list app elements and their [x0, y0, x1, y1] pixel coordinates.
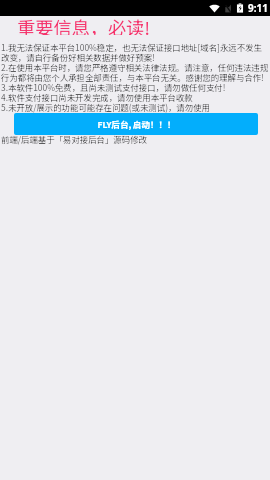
other: Battery charging	[236, 3, 244, 13]
staticText: FLY后台, 启动！！！	[97, 118, 176, 130]
other: No SIM card	[224, 3, 232, 13]
staticText: 重要信息，必读!	[17, 14, 151, 35]
staticText: 5.未开放/展示的功能可能存在问题(或未测试)，请勿使用	[1, 103, 210, 113]
button[interactable]: FLY后台, 启动！！！	[14, 113, 258, 135]
staticText: 前端/后端基于「易对接后台」源码修改	[1, 133, 147, 145]
staticText: 4.软件支付接口尚未开发完成，请勿使用本平台收款	[1, 93, 193, 103]
other: Wi-Fi	[209, 3, 220, 13]
staticText: 2.在使用本平台时，请您严格遵守相关法律法规。请注意，任何违法违规行为都将由您个…	[1, 63, 270, 83]
staticText: 1.我无法保证本平台100%稳定，也无法保证接口地址[域名]永远不发生改变，请自…	[1, 43, 270, 63]
staticText: 3.本软件100%免费，且尚未测试支付接口，请勿做任何支付!	[1, 83, 226, 93]
staticText: 9:11	[248, 1, 268, 15]
